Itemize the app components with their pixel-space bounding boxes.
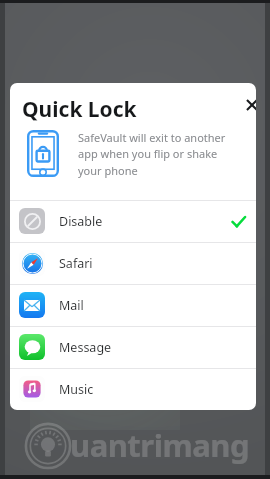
- staticText: uantrimang: [70, 424, 249, 466]
- button[interactable]: Message: [10, 326, 256, 368]
- staticText: Disable: [59, 213, 103, 230]
- staticText: Message: [59, 339, 112, 356]
- staticText: Safari: [59, 255, 93, 272]
- button[interactable]: Music: [10, 368, 256, 410]
- staticText: Mail: [59, 297, 84, 314]
- button[interactable]: Mail: [10, 284, 256, 326]
- button[interactable]: Safari: [10, 242, 256, 284]
- staticText: Quick Lock: [22, 95, 137, 124]
- staticText: Music: [59, 381, 94, 398]
- staticText: SafeVault will exit to another app when …: [78, 130, 238, 179]
- button[interactable]: Close: [238, 91, 256, 119]
- button[interactable]: Disable: [10, 200, 256, 242]
